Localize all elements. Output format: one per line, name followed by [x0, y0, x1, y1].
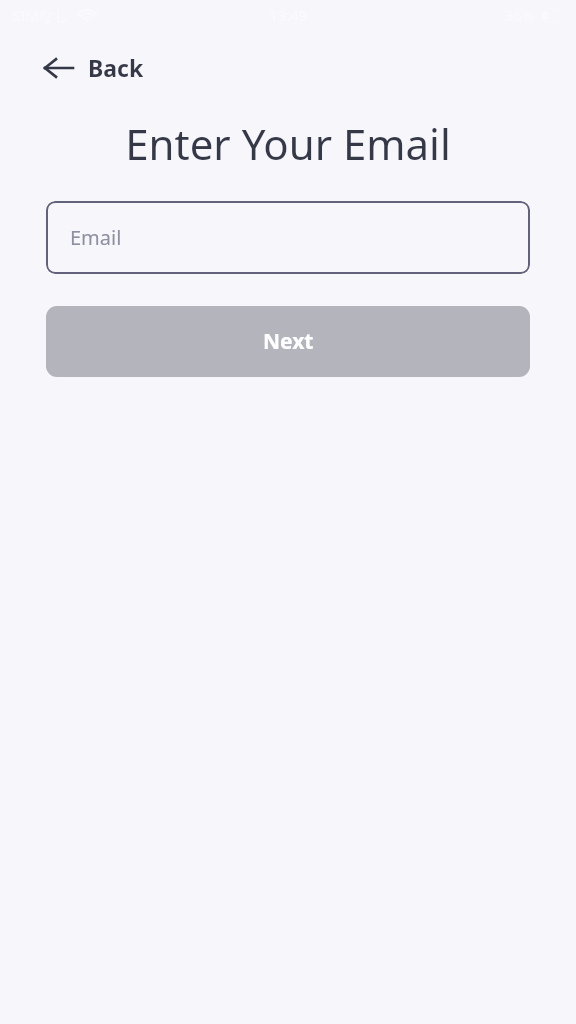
button[interactable]: Next — [46, 306, 530, 377]
staticText: Email — [70, 224, 122, 251]
other: Back — [44, 57, 74, 79]
button[interactable]: Email — [46, 201, 530, 274]
staticText: Next — [263, 327, 314, 356]
staticText: Back — [88, 52, 144, 83]
button[interactable]: Back — [36, 46, 152, 89]
staticText: Enter Your Email — [60, 115, 516, 172]
